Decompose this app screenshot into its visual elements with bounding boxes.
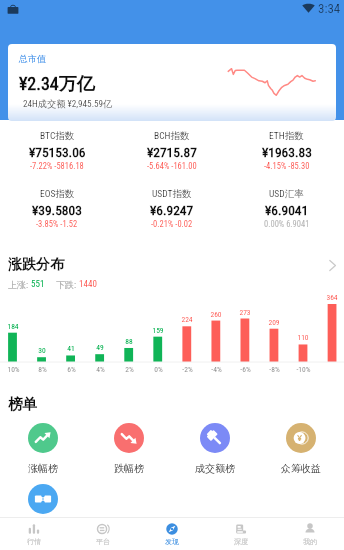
staticText: 184 xyxy=(7,322,19,331)
staticText: 跌幅榜 xyxy=(114,462,144,475)
button[interactable]: 成交额榜 xyxy=(172,423,258,475)
staticText: 发现 xyxy=(165,537,179,546)
staticText: 30 xyxy=(38,346,46,355)
button[interactable]: 总市值 xyxy=(8,44,336,121)
button[interactable]: EOS指数 xyxy=(0,188,114,229)
staticText: BCH指数 xyxy=(154,130,190,142)
staticText: 110 xyxy=(297,333,309,342)
staticText: 成交额榜 xyxy=(195,462,235,475)
button[interactable]: 跌幅榜 xyxy=(86,423,172,475)
staticText: 平台 xyxy=(96,537,110,546)
staticText: 10% xyxy=(7,365,20,374)
button[interactable]: BCH指数 xyxy=(114,130,229,171)
staticText: 224 xyxy=(181,315,193,324)
staticText: 3:34 xyxy=(318,1,341,16)
button[interactable]: 发现 xyxy=(137,518,206,550)
staticText: 涨幅榜 xyxy=(28,462,58,475)
staticText: 众筹收益 xyxy=(281,462,321,475)
staticText: 209 xyxy=(268,318,280,327)
staticText: USD汇率 xyxy=(269,188,304,200)
staticText: 下跌: xyxy=(56,279,77,290)
staticText: ¥6.9041 xyxy=(265,202,309,218)
button[interactable]: USDT指数 xyxy=(114,188,229,229)
button[interactable]: USD汇率 xyxy=(229,188,344,229)
staticText: -4.15% -85.30 xyxy=(264,161,310,171)
staticText: 364 xyxy=(326,293,338,302)
staticText: -5.64% -161.00 xyxy=(147,161,197,171)
staticText: -2% xyxy=(182,365,193,374)
staticText: -0.21% -0.02 xyxy=(151,219,193,229)
staticText: 我的 xyxy=(303,537,317,546)
staticText: 2% xyxy=(125,365,134,374)
staticText: 159 xyxy=(152,326,164,335)
button[interactable]: 众筹收益 xyxy=(258,423,344,475)
staticText: 88 xyxy=(125,337,133,346)
button[interactable]: 我的 xyxy=(275,518,344,550)
button[interactable]: BTC指数 xyxy=(0,130,114,171)
staticText: 273 xyxy=(239,308,251,317)
staticText: -10% xyxy=(296,365,311,374)
staticText: 上涨: xyxy=(8,279,29,290)
button[interactable]: 平台 xyxy=(68,518,137,550)
button[interactable]: 深度 xyxy=(206,518,275,550)
staticText: -3.85% -1.52 xyxy=(36,219,78,229)
staticText: 榜单 xyxy=(8,395,37,413)
staticText: 涨跌分布 xyxy=(8,256,64,274)
staticText: 行情 xyxy=(27,537,41,546)
staticText: -7.22% -5816.18 xyxy=(30,161,84,171)
button[interactable]: 行情 xyxy=(0,518,68,550)
staticText: 551 xyxy=(29,279,45,290)
staticText: ¥1963.83 xyxy=(262,144,312,160)
staticText: 260 xyxy=(210,310,222,319)
staticText: 1440 xyxy=(77,279,97,290)
staticText: ¥75153.06 xyxy=(29,144,86,160)
staticText: EOS指数 xyxy=(40,188,75,200)
staticText: USDT指数 xyxy=(152,188,192,200)
staticText: 0% xyxy=(154,365,163,374)
button[interactable]: ETH指数 xyxy=(229,130,344,171)
staticText: ETH指数 xyxy=(269,130,304,142)
staticText: 深度 xyxy=(234,537,248,546)
staticText: -6% xyxy=(240,365,251,374)
staticText: ¥2715.87 xyxy=(147,144,197,160)
button[interactable]: 优惠券 xyxy=(0,484,86,514)
staticText: 8% xyxy=(38,365,47,374)
staticText: 4% xyxy=(96,365,105,374)
staticText: 49 xyxy=(96,343,104,352)
staticText: 0.00% 6.9041 xyxy=(264,219,310,229)
staticText: 24H成交额 ¥2,945.59亿 xyxy=(23,98,113,110)
staticText: 6% xyxy=(67,365,76,374)
staticText: ¥2.34万亿 xyxy=(19,73,95,96)
staticText: -4% xyxy=(211,365,222,374)
staticText: -8% xyxy=(269,365,280,374)
button[interactable]: 涨幅榜 xyxy=(0,423,86,475)
staticText: 41 xyxy=(67,344,75,353)
button[interactable]: More xyxy=(320,253,344,277)
staticText: ¥39.5803 xyxy=(32,202,82,218)
staticText: 总市值 xyxy=(19,53,46,64)
staticText: BTC指数 xyxy=(40,130,75,142)
staticText: ¥6.9247 xyxy=(150,202,194,218)
